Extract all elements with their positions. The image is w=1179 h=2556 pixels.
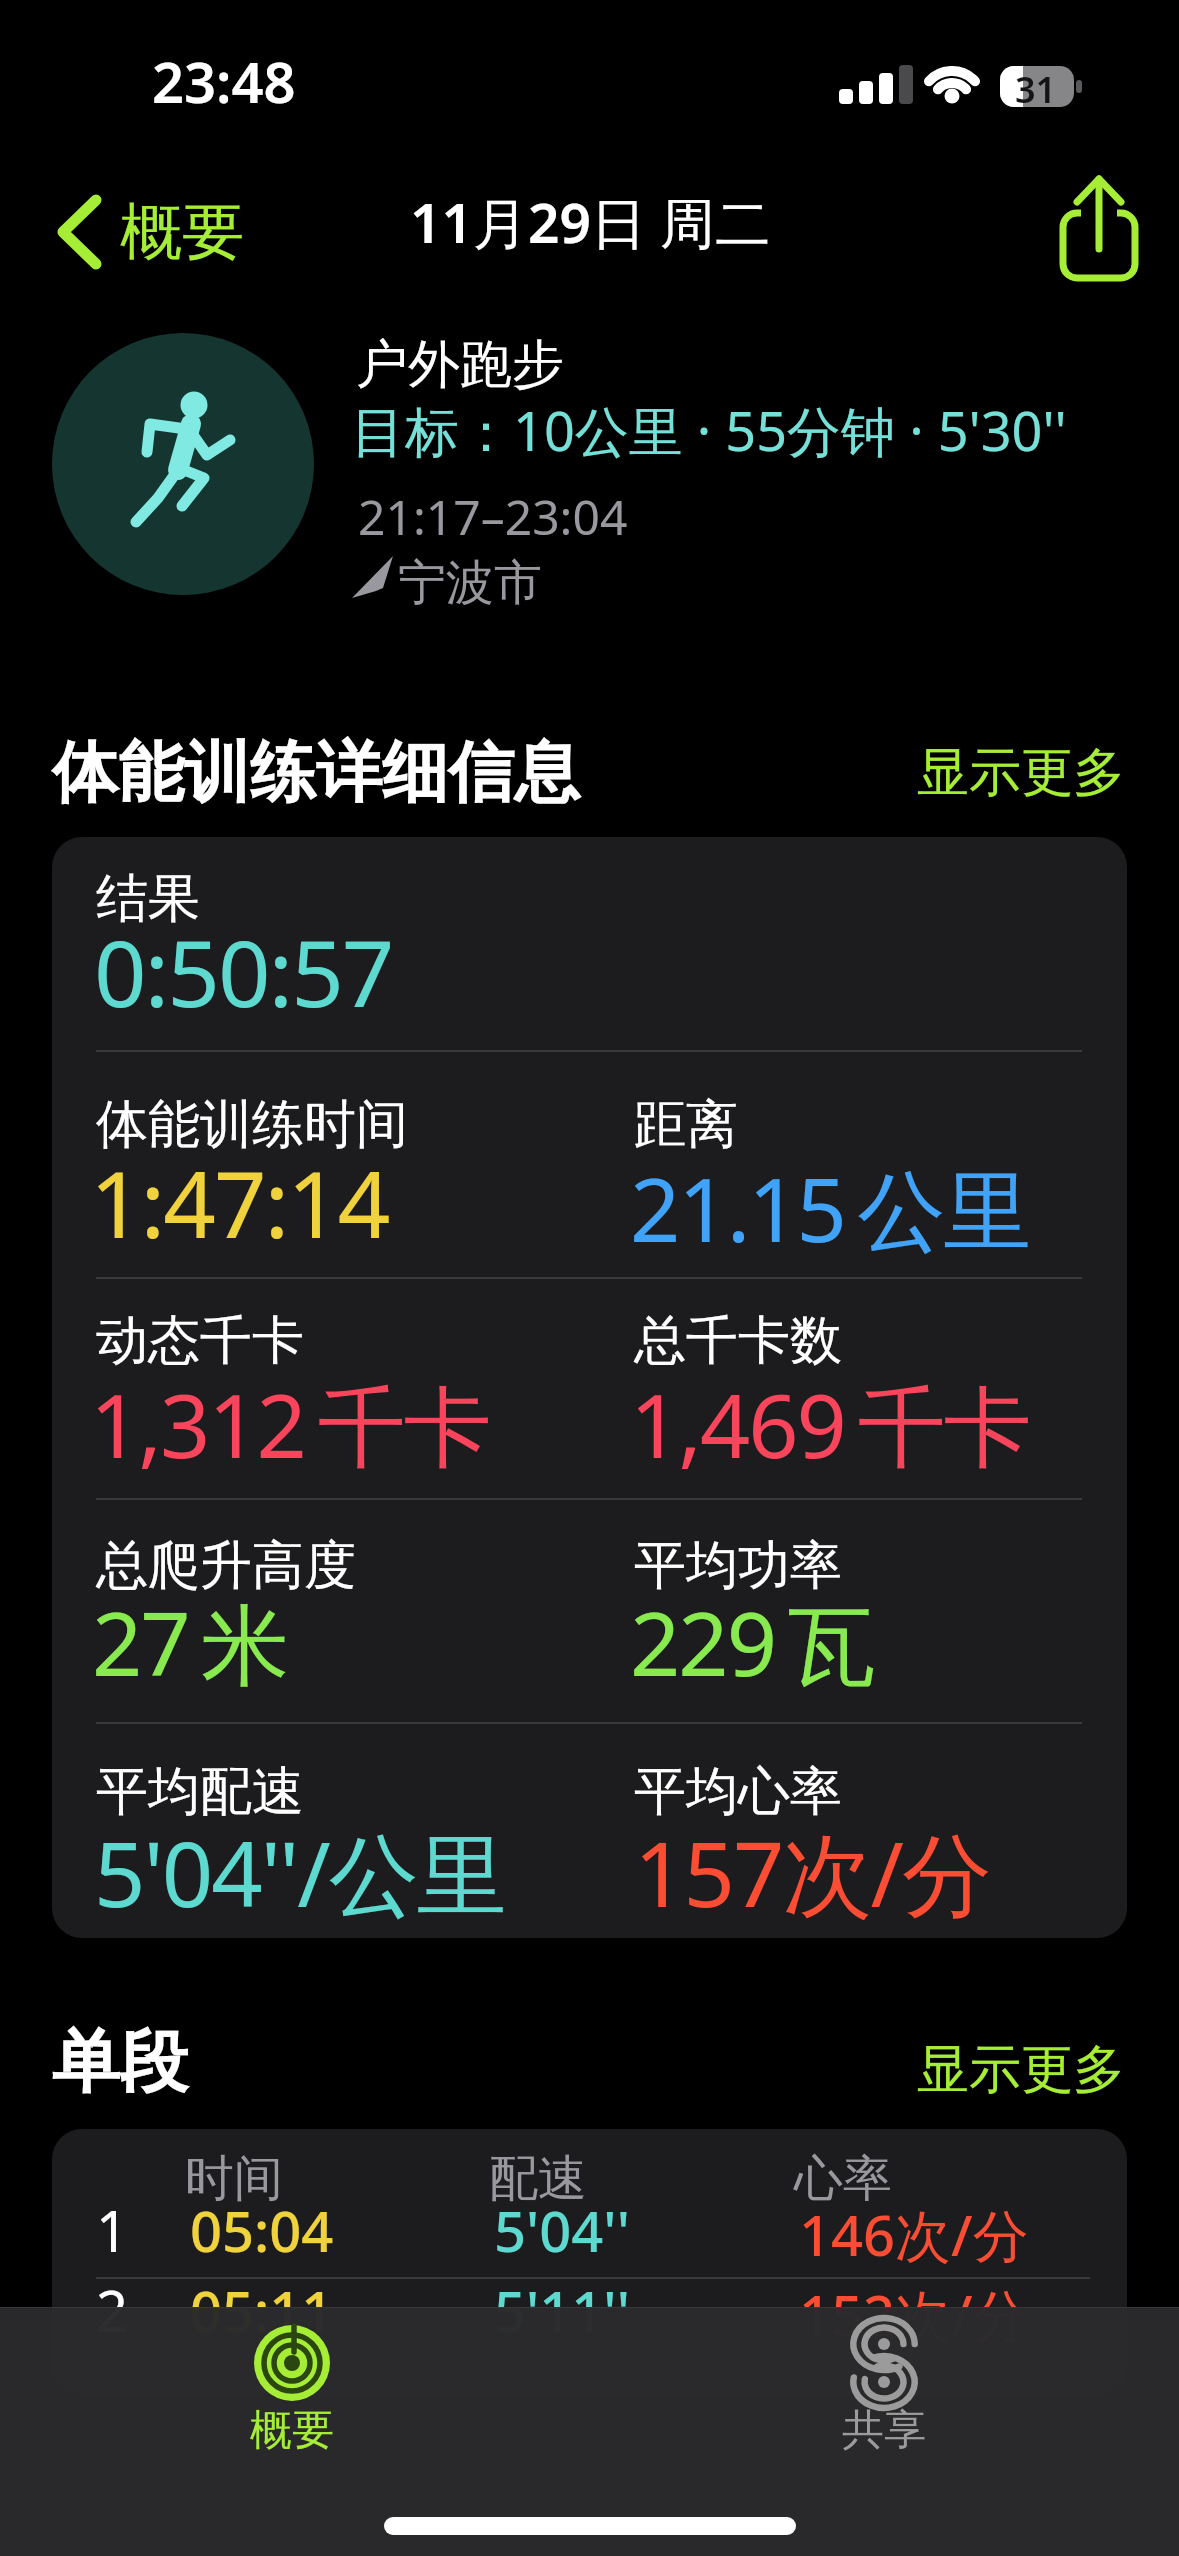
staticText: 概要	[120, 193, 244, 271]
staticText: 05:04	[190, 2192, 334, 2268]
staticText: 5'11''	[494, 2272, 630, 2348]
staticText: 1	[96, 2192, 129, 2268]
button[interactable]: 显示更多	[917, 2037, 1125, 2103]
staticText: 体能训练详细信息	[52, 731, 580, 814]
staticText: 平均心率	[634, 1759, 842, 1825]
staticText: 体能训练时间	[96, 1092, 408, 1158]
staticText: 0:50:57	[94, 909, 393, 1034]
staticText: 结果	[96, 866, 200, 932]
button[interactable]	[1045, 170, 1155, 290]
staticText: 31	[1015, 65, 1057, 114]
staticText: 户外跑步	[356, 332, 564, 398]
staticText: 2	[96, 2272, 129, 2348]
staticText: 共享	[842, 2404, 926, 2457]
staticText: 23:48	[152, 43, 296, 119]
staticText: 动态千卡	[96, 1308, 304, 1374]
staticText: 1:47:14	[90, 1140, 389, 1265]
staticText: 总千卡数	[634, 1308, 842, 1374]
staticText: 1,469 千卡	[630, 1364, 1030, 1484]
staticText: 152次/分	[799, 2276, 1029, 2352]
staticText: 概要	[250, 2404, 334, 2457]
staticText: 27 米	[92, 1582, 288, 1702]
staticText: 目标：10公里 · 55分钟 · 5'30''	[351, 393, 1067, 467]
button[interactable]	[40, 185, 270, 280]
button[interactable]	[172, 2310, 412, 2460]
staticText: 平均功率	[634, 1533, 842, 1599]
staticText: 146次/分	[799, 2196, 1029, 2272]
staticText: 配速	[489, 2148, 587, 2210]
staticText: 5'04''/公里	[94, 1811, 505, 1934]
staticText: 157次/分	[634, 1811, 990, 1934]
staticText: 229 瓦	[630, 1582, 874, 1702]
button[interactable]	[764, 2310, 1004, 2460]
staticText: 05:11	[190, 2272, 334, 2348]
staticText: 5'04''	[494, 2192, 630, 2268]
staticText: 距离	[634, 1092, 738, 1158]
staticText: 21:17–23:04	[358, 484, 628, 549]
staticText: 心率	[794, 2148, 892, 2210]
staticText: 平均配速	[96, 1759, 304, 1825]
staticText: 时间	[185, 2148, 283, 2210]
staticText: 总爬升高度	[96, 1533, 356, 1599]
staticText: 1,312 千卡	[90, 1364, 490, 1484]
button[interactable]: 显示更多	[917, 740, 1125, 806]
staticText: 宁波市	[398, 553, 542, 613]
staticText: 11月29日 周二	[410, 184, 771, 259]
staticText: 单段	[52, 2020, 188, 2106]
staticText: 21.15 公里	[630, 1148, 1030, 1268]
